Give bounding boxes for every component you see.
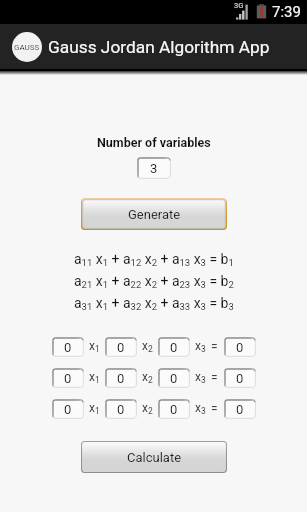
staticText: 0 (117, 340, 125, 355)
staticText: x1 (89, 370, 100, 386)
staticText: x3 (195, 401, 206, 417)
button[interactable]: 0 (158, 368, 190, 388)
staticText: Calculate (127, 450, 182, 465)
staticText: Gauss Jordan Algorithm App (48, 37, 270, 57)
button[interactable]: 3 (137, 157, 171, 179)
staticText: = (211, 340, 218, 354)
staticText: Number of variables (97, 135, 211, 150)
button[interactable]: 0 (105, 399, 137, 419)
staticText: a31 x1 + a32 x2 + a33 x3 = b3 (74, 295, 234, 313)
button[interactable]: 0 (224, 337, 256, 357)
staticText: 0 (236, 402, 244, 417)
staticText: 7:39 (272, 3, 301, 21)
staticText: = (211, 371, 218, 385)
button[interactable]: Generate (81, 198, 227, 230)
staticText: 0 (170, 340, 178, 355)
staticText: 0 (64, 340, 72, 355)
staticText: 0 (64, 371, 72, 386)
staticText: = (211, 402, 218, 416)
staticText: 0 (170, 402, 178, 417)
staticText: 0 (64, 402, 72, 417)
staticText: x1 (89, 401, 100, 417)
button[interactable]: 0 (52, 337, 84, 357)
staticText: GAUSS (14, 43, 40, 52)
staticText: x2 (142, 401, 153, 417)
other: App logo (12, 32, 42, 62)
staticText: a11 x1 + a12 x2 + a13 x3 = b1 (74, 251, 234, 269)
button[interactable]: 0 (105, 368, 137, 388)
staticText: 0 (117, 402, 125, 417)
staticText: x3 (195, 339, 206, 355)
staticText: 0 (236, 371, 244, 386)
staticText: a21 x1 + a22 x2 + a23 x3 = b2 (74, 273, 234, 291)
staticText: 0 (170, 371, 178, 386)
staticText: x3 (195, 370, 206, 386)
button[interactable]: 0 (224, 399, 256, 419)
staticText: 0 (117, 371, 125, 386)
staticText: x1 (89, 339, 100, 355)
button[interactable]: Calculate (81, 441, 227, 473)
staticText: 3G (234, 1, 244, 10)
staticText: x2 (142, 339, 153, 355)
staticText: Generate (128, 207, 181, 222)
button[interactable]: 0 (224, 368, 256, 388)
staticText: 3 (150, 161, 158, 176)
button[interactable]: 0 (52, 368, 84, 388)
button[interactable]: 0 (105, 337, 137, 357)
button[interactable]: 0 (52, 399, 84, 419)
staticText: x2 (142, 370, 153, 386)
button[interactable]: 0 (158, 399, 190, 419)
button[interactable]: 0 (158, 337, 190, 357)
staticText: 0 (236, 340, 244, 355)
